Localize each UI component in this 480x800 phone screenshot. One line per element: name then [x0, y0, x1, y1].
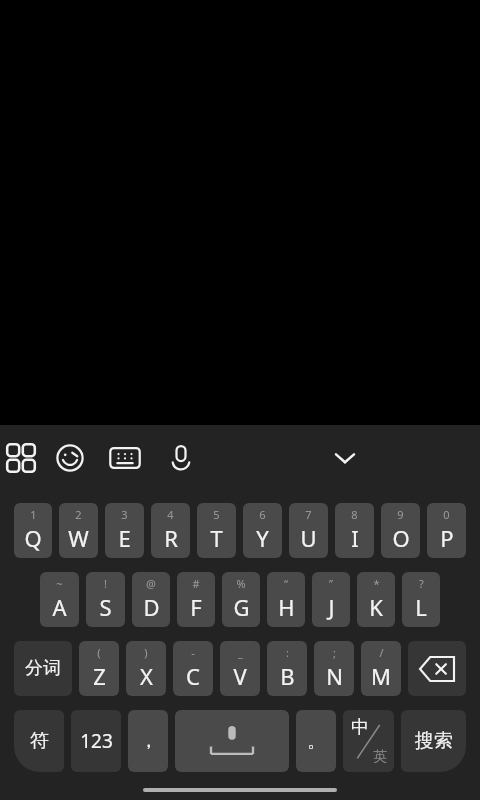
staticText: ?	[419, 576, 424, 591]
staticText: 搜索	[415, 729, 453, 753]
staticText: :	[286, 645, 289, 660]
button[interactable]: 2	[59, 503, 98, 558]
staticText: P	[440, 523, 454, 553]
button[interactable]: Hide keyboard	[210, 425, 480, 490]
button[interactable]: 123	[71, 710, 121, 772]
staticText: 分词	[25, 657, 61, 680]
staticText: E	[118, 523, 131, 553]
staticText: H	[278, 592, 295, 622]
staticText: F	[190, 592, 202, 622]
button[interactable]: 9	[381, 503, 420, 558]
staticText: 5	[213, 507, 220, 522]
staticText: 123	[80, 728, 113, 754]
staticText: V	[233, 661, 247, 691]
button[interactable]: Voice input	[152, 425, 210, 490]
staticText: #	[192, 576, 200, 591]
button[interactable]: ~	[40, 572, 79, 627]
button[interactable]: (	[79, 641, 119, 696]
button[interactable]: ，	[128, 710, 168, 772]
staticText: 英	[373, 748, 387, 766]
staticText: B	[280, 661, 295, 691]
button[interactable]: Keyboard layouts	[0, 425, 42, 490]
staticText: 9	[397, 507, 404, 522]
staticText: @	[146, 576, 156, 591]
button[interactable]: _	[220, 641, 260, 696]
button[interactable]: 1	[14, 503, 52, 558]
staticText: Q	[24, 523, 42, 553]
button[interactable]: 4	[151, 503, 190, 558]
staticText: ~	[56, 576, 63, 591]
staticText: 6	[259, 507, 266, 522]
button[interactable]: Emoji	[42, 425, 97, 490]
staticText: ，	[139, 729, 158, 753]
button[interactable]: 符	[14, 710, 64, 772]
button[interactable]: !	[86, 572, 125, 627]
button[interactable]: %	[222, 572, 260, 627]
staticText: ;	[333, 645, 336, 660]
button[interactable]: -	[173, 641, 213, 696]
button[interactable]: 。	[296, 710, 336, 772]
staticText: O	[392, 523, 410, 553]
button[interactable]: /	[361, 641, 401, 696]
staticText: U	[300, 523, 317, 553]
staticText: 符	[30, 729, 49, 753]
button[interactable]: “	[267, 572, 305, 627]
button[interactable]: ?	[402, 572, 440, 627]
staticText: 中	[351, 716, 369, 739]
staticText: Y	[256, 523, 269, 553]
staticText: X	[140, 661, 153, 691]
button[interactable]: Space	[175, 710, 289, 772]
button[interactable]: )	[126, 641, 166, 696]
staticText: S	[99, 592, 112, 622]
staticText: !	[104, 576, 107, 591]
button[interactable]: 中	[343, 710, 394, 772]
staticText: 3	[121, 507, 128, 522]
button[interactable]: 7	[289, 503, 328, 558]
staticText: D	[143, 592, 160, 622]
staticText: I	[351, 523, 359, 553]
staticText: %	[236, 576, 246, 591]
button[interactable]: :	[267, 641, 307, 696]
button[interactable]: ;	[314, 641, 354, 696]
button[interactable]: Keyboard settings	[97, 425, 152, 490]
staticText: ”	[329, 576, 333, 591]
staticText: 7	[305, 507, 312, 522]
staticText: “	[284, 576, 288, 591]
staticText: 8	[351, 507, 358, 522]
button[interactable]: 6	[243, 503, 282, 558]
staticText: (	[97, 645, 101, 660]
staticText: 4	[167, 507, 174, 522]
staticText: M	[371, 661, 391, 691]
staticText: )	[144, 645, 148, 660]
button[interactable]: @	[132, 572, 170, 627]
staticText: J	[328, 592, 335, 622]
button[interactable]: 3	[105, 503, 144, 558]
button[interactable]: 0	[427, 503, 466, 558]
button[interactable]: ”	[312, 572, 350, 627]
staticText: *	[373, 576, 380, 591]
staticText: K	[369, 592, 383, 622]
staticText: /	[379, 645, 384, 660]
staticText: 2	[75, 507, 82, 522]
button[interactable]: Backspace	[408, 641, 466, 696]
staticText: C	[186, 661, 200, 691]
staticText: 0	[443, 507, 450, 522]
staticText: 。	[307, 729, 326, 753]
staticText: G	[233, 592, 250, 622]
button[interactable]: 8	[335, 503, 374, 558]
button[interactable]: *	[357, 572, 395, 627]
button[interactable]: 分词	[14, 641, 72, 696]
staticText: N	[326, 661, 343, 691]
staticText: W	[68, 523, 89, 553]
button[interactable]: #	[177, 572, 215, 627]
staticText: L	[415, 592, 427, 622]
staticText: R	[164, 523, 178, 553]
staticText: _	[238, 645, 243, 660]
staticText: 1	[30, 507, 37, 522]
staticText: -	[191, 645, 195, 660]
button[interactable]: 5	[197, 503, 236, 558]
staticText: T	[210, 523, 223, 553]
staticText: A	[52, 592, 67, 622]
button[interactable]: 搜索	[401, 710, 466, 772]
staticText: Z	[93, 661, 106, 691]
